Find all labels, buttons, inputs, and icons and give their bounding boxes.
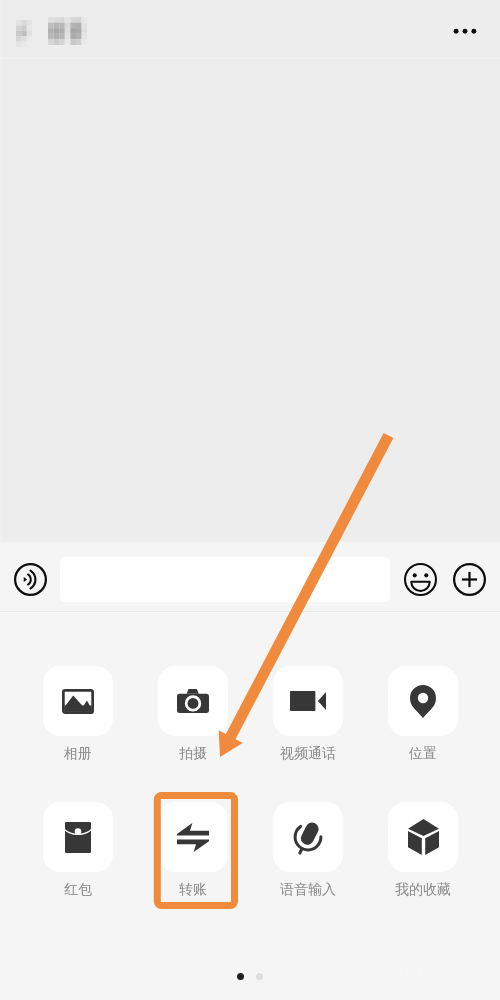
staticText: 转账: [179, 881, 207, 899]
button[interactable]: [60, 557, 390, 602]
button[interactable]: More: [441, 6, 489, 56]
button[interactable]: 视频通话: [266, 664, 350, 776]
button[interactable]: 我的收藏: [381, 800, 465, 912]
button[interactable]: Emoji: [399, 542, 442, 617]
button[interactable]: 相册: [36, 664, 120, 776]
staticText: 相册: [64, 745, 92, 763]
staticText: 拍摄: [179, 745, 207, 763]
button[interactable]: 位置: [381, 664, 465, 776]
staticText: 红包: [64, 881, 92, 899]
staticText: 视频通话: [280, 745, 336, 763]
button[interactable]: 拍摄: [151, 664, 235, 776]
staticText: 位置: [409, 745, 437, 763]
button[interactable]: Back: [10, 14, 42, 46]
button[interactable]: 语音输入: [266, 800, 350, 912]
button[interactable]: More options: [448, 542, 491, 617]
button[interactable]: 红包: [36, 800, 120, 912]
staticText: 语音输入: [280, 881, 336, 899]
button[interactable]: 转账: [151, 800, 235, 912]
staticText: 我的收藏: [395, 881, 451, 899]
button[interactable]: Voice input: [9, 542, 51, 617]
